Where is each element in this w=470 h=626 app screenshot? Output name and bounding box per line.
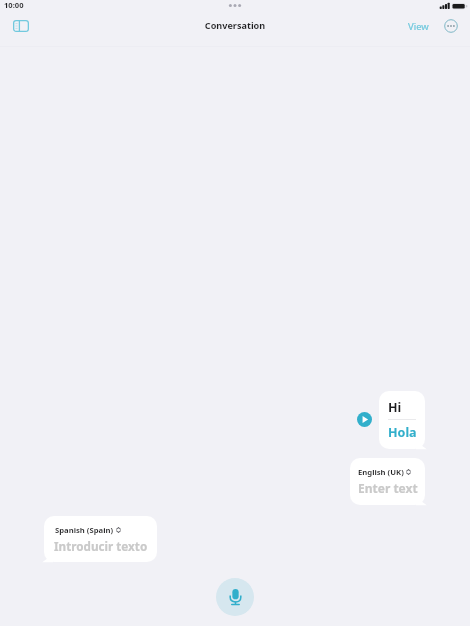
staticText: Hi <box>388 399 402 416</box>
staticText: Enter text <box>358 480 418 496</box>
staticText: Introducir texto <box>54 538 148 554</box>
button[interactable]: Hi <box>379 391 425 449</box>
button[interactable]: Show sidebar <box>7 13 34 39</box>
button[interactable]: Record audio <box>216 578 254 616</box>
button[interactable]: Play translation <box>357 412 372 427</box>
button[interactable]: Spanish (Spain) <box>44 516 157 562</box>
staticText: 10:00 <box>4 0 24 10</box>
staticText: Spanish (Spain) <box>55 525 114 535</box>
staticText: View <box>408 20 429 33</box>
staticText: Hola <box>388 424 417 441</box>
button[interactable]: More options <box>438 13 464 39</box>
button[interactable]: View <box>403 16 434 36</box>
button[interactable]: English (UK) <box>350 458 425 505</box>
staticText: Conversation <box>0 19 470 31</box>
staticText: English (UK) <box>358 467 404 477</box>
